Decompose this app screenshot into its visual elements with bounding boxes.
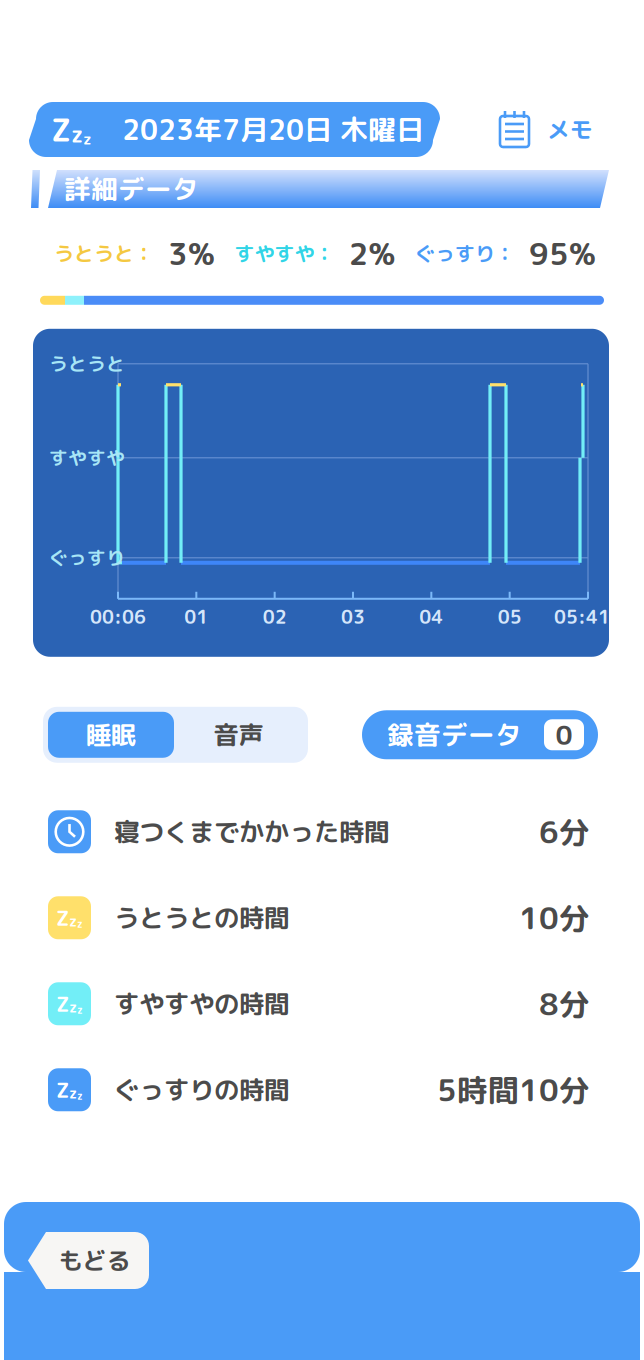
staticText: 2023年7月20日 木曜日 <box>122 110 424 149</box>
staticText: 05:41 <box>554 604 610 630</box>
staticText: z <box>77 917 83 931</box>
staticText: z <box>69 1083 77 1103</box>
staticText: 録音データ <box>387 716 522 753</box>
staticText: うとうと <box>49 351 125 377</box>
button[interactable]: メモ <box>499 111 593 148</box>
staticText: うとうとの時間 <box>114 900 289 935</box>
staticText: すやすやの時間 <box>114 986 289 1021</box>
staticText: 10分 <box>519 896 590 939</box>
staticText: すやすや： <box>234 239 334 267</box>
staticText: 02 <box>263 604 287 630</box>
button[interactable]: 録音データ <box>362 710 598 759</box>
staticText: メモ <box>547 114 593 145</box>
button[interactable]: Z <box>0 1047 644 1133</box>
staticText: z <box>77 1003 83 1017</box>
button[interactable]: Z <box>29 102 440 157</box>
staticText: 8分 <box>539 982 590 1025</box>
staticText: ぐっすりの時間 <box>114 1072 289 1107</box>
staticText: もどる <box>58 1244 130 1277</box>
staticText: z <box>71 119 83 149</box>
staticText: ぐっすり： <box>415 239 515 267</box>
staticText: z <box>77 1089 83 1103</box>
staticText: 0 <box>555 716 572 753</box>
staticText: z <box>69 997 77 1017</box>
staticText: 04 <box>419 604 443 630</box>
staticText: z <box>83 128 92 149</box>
staticText: z <box>69 911 77 931</box>
staticText: 3% <box>168 232 215 275</box>
button[interactable]: Z <box>0 961 644 1047</box>
button[interactable]: 睡眠 <box>48 712 174 758</box>
staticText: Z <box>56 1075 69 1105</box>
staticText: 03 <box>341 604 365 630</box>
button[interactable]: 音声 <box>174 712 303 758</box>
staticText: 6分 <box>539 810 590 853</box>
staticText: 睡眠 <box>86 717 136 752</box>
staticText: 01 <box>184 604 208 630</box>
staticText: Z <box>51 107 71 152</box>
staticText: 05 <box>498 604 522 630</box>
staticText: 音声 <box>213 717 263 752</box>
staticText: 寝つくまでかかった時間 <box>114 814 389 849</box>
button[interactable]: Z <box>0 875 644 961</box>
staticText: うとうと： <box>54 239 154 267</box>
button[interactable]: 寝つくまでかかった時間 <box>0 789 644 875</box>
staticText: 95% <box>529 232 596 275</box>
button[interactable]: もどる <box>28 1232 149 1289</box>
staticText: ぐっすり <box>49 545 125 571</box>
staticText: 詳細データ <box>64 170 199 208</box>
staticText: すやすや <box>49 445 125 471</box>
staticText: Z <box>56 989 69 1019</box>
staticText: 2% <box>348 232 395 275</box>
staticText: 5時間10分 <box>437 1068 590 1111</box>
staticText: Z <box>56 903 69 933</box>
staticText: 00:06 <box>90 604 146 630</box>
